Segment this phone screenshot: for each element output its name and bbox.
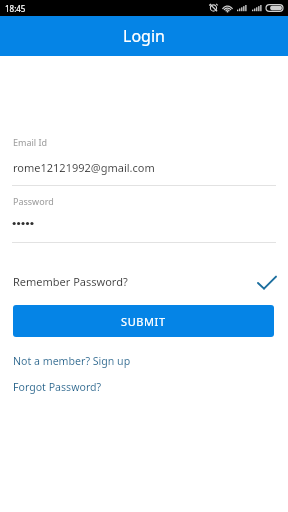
staticText: Remember Password? — [13, 274, 128, 289]
staticText: Password — [13, 195, 54, 207]
staticText: SUBMIT — [121, 314, 166, 329]
button[interactable]: Email Id — [12, 130, 276, 186]
button[interactable]: Password — [12, 189, 276, 243]
button[interactable]: Remember password, checked — [254, 271, 278, 295]
staticText: Forgot Password? — [13, 380, 102, 394]
button[interactable]: Forgot Password? — [13, 380, 102, 394]
button[interactable]: SUBMIT — [13, 305, 274, 337]
button[interactable]: Not a member? Sign up — [13, 354, 131, 368]
staticText: Login — [123, 25, 165, 47]
staticText: Not a member? Sign up — [13, 354, 131, 368]
staticText: Email Id — [13, 136, 48, 148]
staticText: 18:45 — [5, 3, 26, 14]
staticText: rome12121992@gmail.com — [13, 160, 155, 175]
